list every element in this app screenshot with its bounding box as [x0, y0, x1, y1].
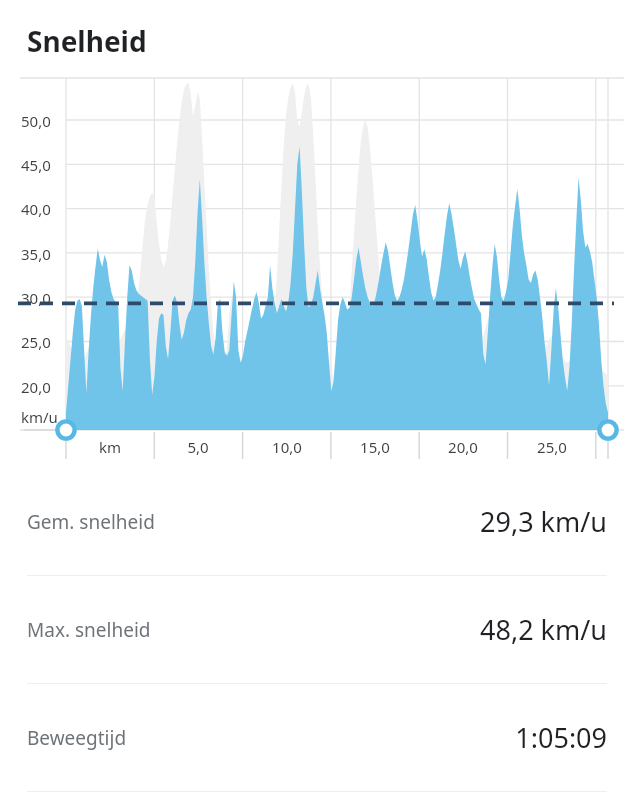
staticText: km/u [21, 407, 58, 427]
staticText: 40,0 [21, 199, 51, 219]
staticText: 48,2 km/u [480, 611, 607, 648]
staticText: Gem. snelheid [27, 509, 155, 535]
button[interactable]: Gem. snelheid [0, 468, 634, 575]
staticText: 15,0 [353, 437, 397, 457]
staticText: 20,0 [441, 437, 485, 457]
button[interactable]: Beweegtijd [0, 684, 634, 791]
staticText: Snelheid [27, 22, 147, 60]
staticText: Max. snelheid [27, 617, 151, 643]
staticText: km [88, 437, 132, 457]
staticText: 25,0 [530, 437, 574, 457]
button[interactable]: Max. snelheid [0, 576, 634, 683]
staticText: 30,0 [21, 288, 51, 308]
staticText: 1:05:09 [515, 719, 607, 756]
staticText: 5,0 [176, 437, 220, 457]
staticText: 25,0 [21, 332, 51, 352]
staticText: 50,0 [21, 111, 51, 131]
staticText: 20,0 [21, 377, 51, 397]
staticText: 29,3 km/u [480, 503, 607, 540]
staticText: 10,0 [265, 437, 309, 457]
staticText: Beweegtijd [27, 725, 127, 751]
staticText: 35,0 [21, 244, 51, 264]
staticText: 45,0 [21, 155, 51, 175]
